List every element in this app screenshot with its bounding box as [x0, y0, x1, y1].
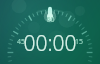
staticText: 45: [17, 37, 26, 47]
staticText: 60: [46, 15, 55, 25]
button[interactable]: Timer: [0, 0, 100, 64]
staticText: 00:00: [23, 29, 77, 58]
staticText: 15: [75, 37, 84, 47]
